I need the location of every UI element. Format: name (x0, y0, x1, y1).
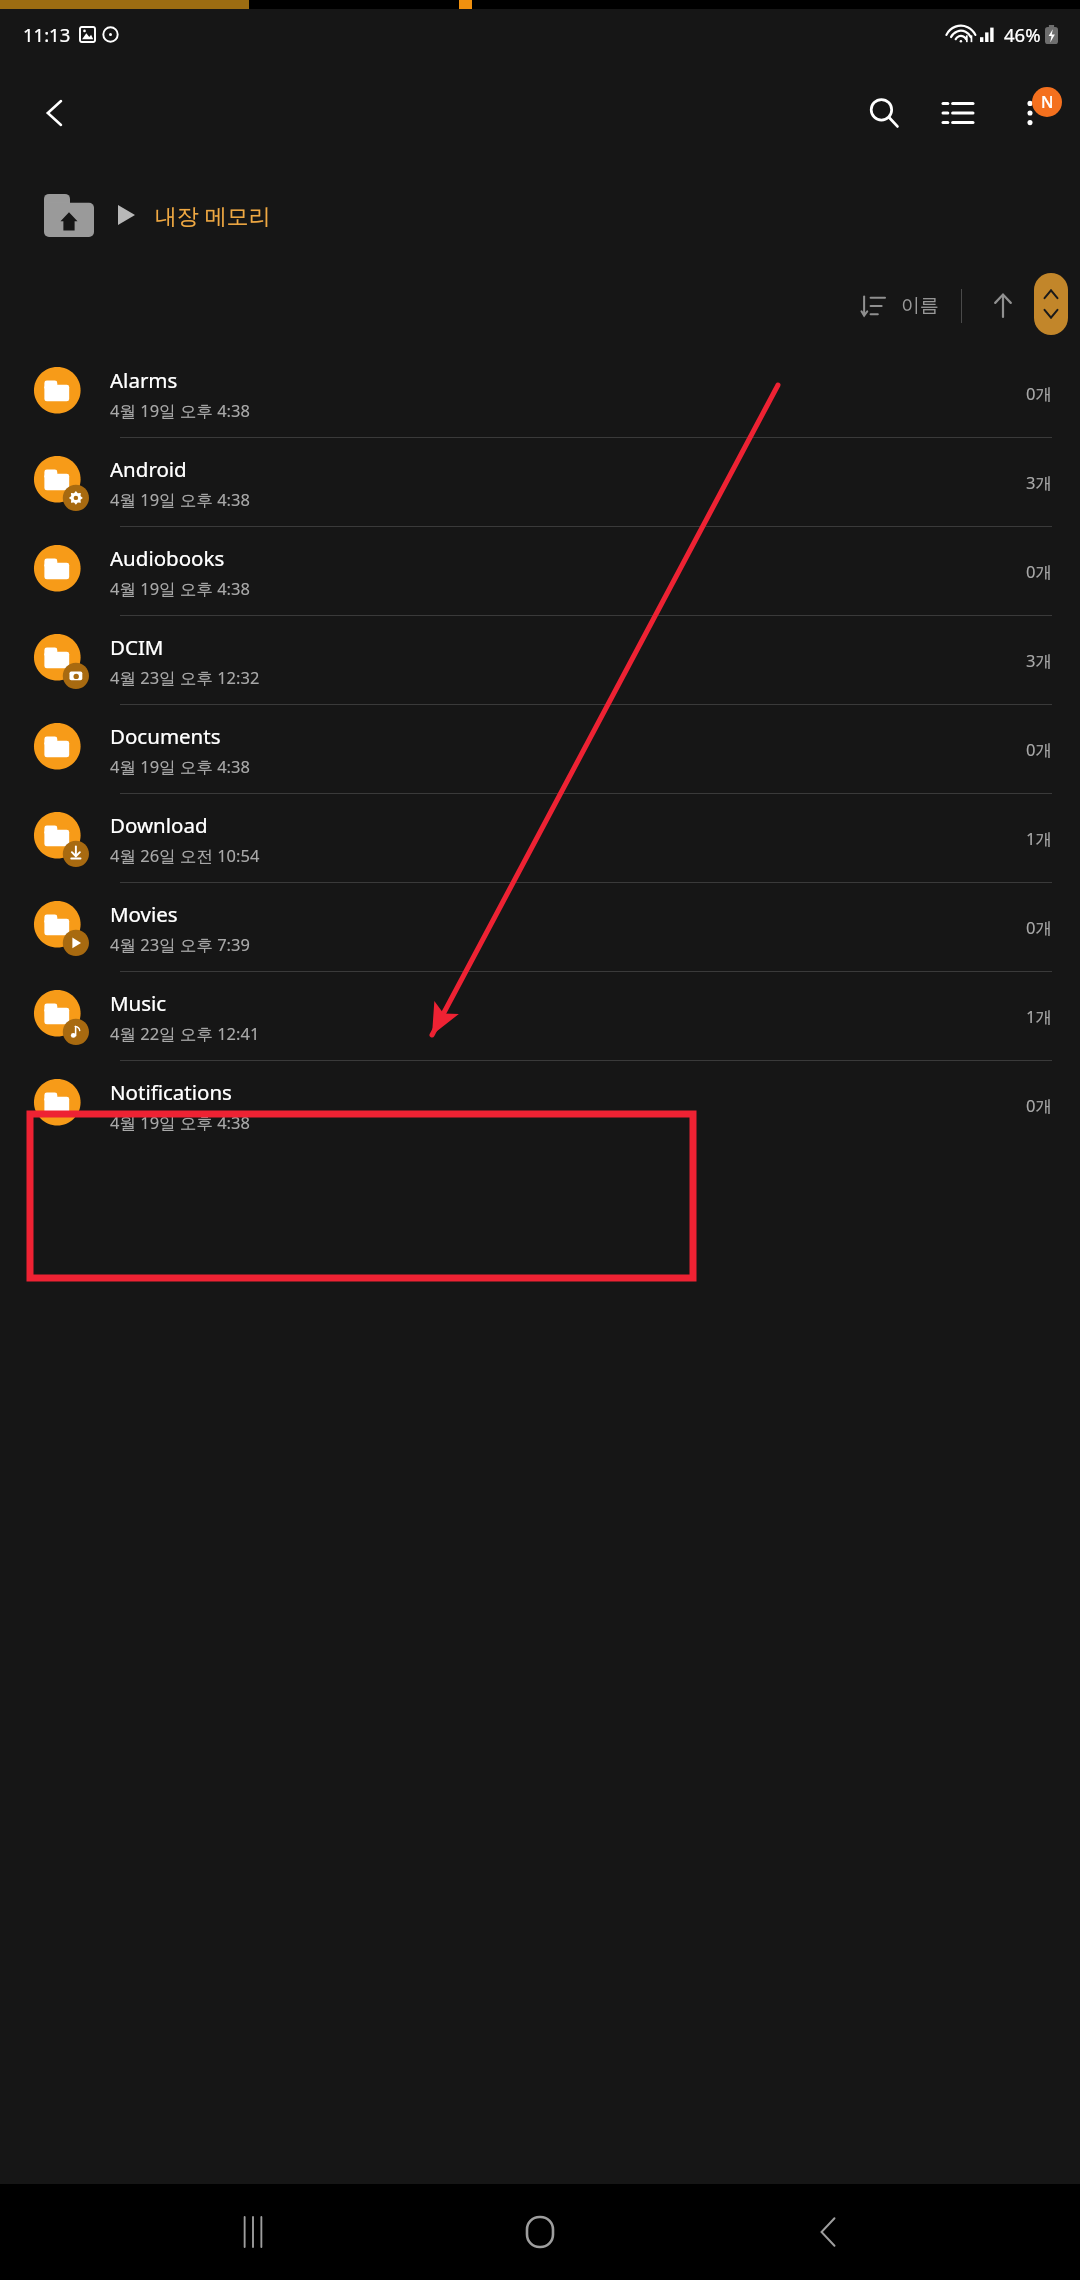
button[interactable]: Home (505, 2197, 575, 2267)
button[interactable]: Documents (0, 705, 1080, 794)
staticText: Download (110, 811, 208, 839)
button[interactable]: More options (996, 79, 1064, 147)
staticText: 이름 (901, 294, 939, 318)
staticText: 3개 (1026, 471, 1052, 494)
button[interactable]: Download (0, 794, 1080, 883)
staticText: 4월 19일 오후 4:38 (110, 399, 250, 422)
staticText: 0개 (1026, 738, 1052, 761)
button[interactable]: Notifications (0, 1061, 1080, 1150)
staticText: Music (110, 989, 167, 1017)
staticText: Alarms (110, 366, 178, 394)
button[interactable]: 내장 메모리 (155, 200, 271, 230)
staticText: Android (110, 455, 187, 483)
button[interactable]: Alarms (0, 349, 1080, 438)
staticText: 4월 22일 오후 12:41 (110, 1022, 260, 1045)
button[interactable]: Sort ascending (984, 287, 1022, 325)
button[interactable]: Music (0, 972, 1080, 1061)
button[interactable]: Home (44, 193, 94, 237)
button[interactable]: Back (24, 82, 86, 144)
button[interactable]: View as list (924, 79, 992, 147)
staticText: 4월 19일 오후 4:38 (110, 1111, 250, 1134)
staticText: 0개 (1026, 916, 1052, 939)
staticText: 11:13 (23, 22, 71, 47)
staticText: N (1041, 91, 1054, 113)
staticText: 4월 19일 오후 4:38 (110, 755, 250, 778)
staticText: DCIM (110, 633, 164, 661)
staticText: 1개 (1026, 827, 1052, 850)
staticText: 내장 메모리 (155, 200, 271, 230)
staticText: 4월 26일 오전 10:54 (110, 844, 260, 867)
staticText: 0개 (1026, 1094, 1052, 1117)
button[interactable]: Recents (218, 2197, 288, 2267)
staticText: Documents (110, 722, 221, 750)
button[interactable]: Movies (0, 883, 1080, 972)
button[interactable]: Audiobooks (0, 527, 1080, 616)
staticText: 0개 (1026, 560, 1052, 583)
staticText: 0개 (1026, 382, 1052, 405)
button[interactable]: Search (850, 79, 918, 147)
staticText: 46% (1004, 22, 1041, 47)
button[interactable]: Scroll (1034, 273, 1068, 335)
button[interactable]: DCIM (0, 616, 1080, 705)
button[interactable]: Android (0, 438, 1080, 527)
staticText: 4월 19일 오후 4:38 (110, 488, 250, 511)
staticText: 4월 23일 오후 7:39 (110, 933, 250, 956)
staticText: Notifications (110, 1078, 232, 1106)
button[interactable]: 이름 (861, 294, 939, 318)
staticText: Audiobooks (110, 544, 225, 572)
staticText: 4월 19일 오후 4:38 (110, 577, 250, 600)
button[interactable]: Back (793, 2197, 863, 2267)
staticText: 3개 (1026, 649, 1052, 672)
staticText: 4월 23일 오후 12:32 (110, 666, 260, 689)
staticText: 1개 (1026, 1005, 1052, 1028)
staticText: Movies (110, 900, 178, 928)
